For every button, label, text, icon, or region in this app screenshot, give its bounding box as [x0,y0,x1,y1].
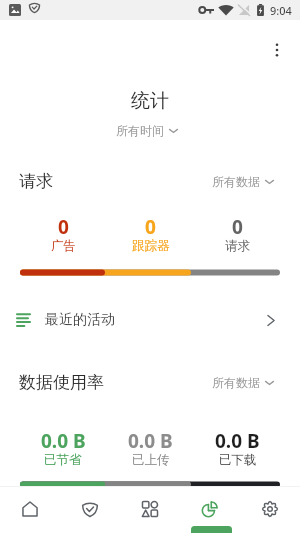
staticText: 已上传 [132,452,170,468]
staticText: 所有数据 [212,375,260,390]
staticText: 所有数据 [212,174,260,189]
staticText: 0.0 B [215,428,260,454]
staticText: 请求 [225,238,250,254]
button[interactable]: Settings [240,486,300,533]
staticText: 已下载 [219,452,257,468]
staticText: 0.0 B [128,428,173,454]
staticText: 9:04 [270,3,292,18]
button[interactable]: Home [0,486,60,533]
staticText: 最近的活动 [45,311,115,329]
button[interactable]: 所有数据 [208,172,279,191]
staticText: 已节省 [44,452,82,468]
button[interactable]: More options [265,38,289,62]
staticText: 0 [232,214,243,240]
button[interactable]: 所有时间 [112,121,183,139]
staticText: 0 [145,214,156,240]
button[interactable]: Protection [60,486,120,533]
button[interactable]: Statistics [180,486,240,533]
button[interactable]: 所有数据 [208,373,279,392]
staticText: 广告 [51,238,76,254]
staticText: 统计 [0,89,300,113]
staticText: 数据使用率 [19,372,104,393]
staticText: 0.0 B [41,428,86,454]
staticText: 跟踪器 [132,238,170,254]
staticText: 0 [58,214,69,240]
button[interactable]: Apps [120,486,180,533]
button[interactable]: 最近的活动 [0,302,300,338]
staticText: 请求 [19,171,53,192]
staticText: 所有时间 [116,123,164,137]
